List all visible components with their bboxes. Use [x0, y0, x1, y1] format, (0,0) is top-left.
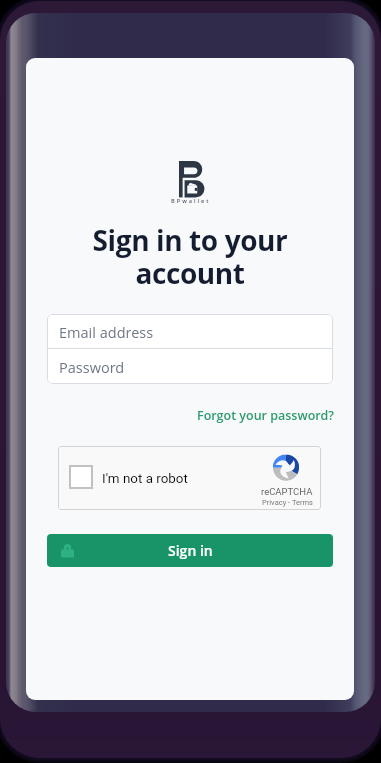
button[interactable]: I'm not a robot — [58, 446, 321, 510]
button[interactable]: Email address — [47, 314, 333, 348]
button[interactable]: Password — [47, 349, 333, 383]
staticText: Password — [59, 358, 125, 378]
button[interactable]: Sign in — [47, 534, 333, 567]
staticText: I'm not a robot — [102, 471, 188, 487]
staticText: Privacy - Terms — [262, 498, 313, 507]
staticText: Forgot your password? — [197, 407, 334, 424]
staticText: Email address — [59, 323, 154, 343]
staticText: Sign in — [168, 541, 213, 560]
button[interactable]: Forgot your password? — [197, 407, 334, 424]
staticText: reCAPTCHA — [261, 486, 313, 497]
staticText: BPwallet — [171, 197, 211, 205]
staticText: Sign in to your account — [52, 221, 328, 292]
